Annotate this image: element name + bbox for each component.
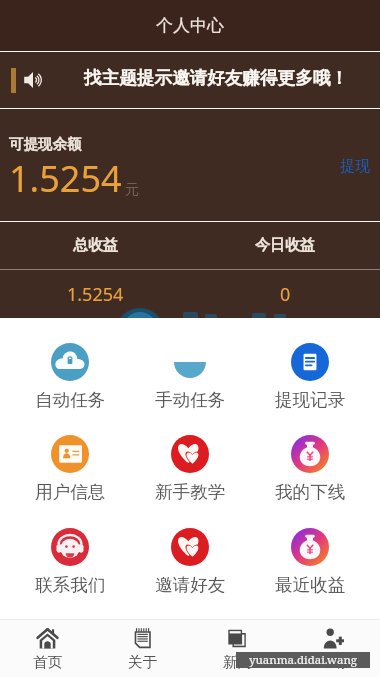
button[interactable]: 找主题提示邀请好友赚得更多哦！	[0, 52, 380, 108]
staticText: 邀请	[318, 653, 348, 671]
staticText: 可提现余额	[9, 135, 82, 153]
staticText: 个人中心	[156, 15, 224, 36]
staticText: 手动任务	[155, 389, 226, 411]
staticText: 新手教学	[155, 481, 226, 503]
button[interactable]: 新闻	[190, 620, 285, 677]
staticText: 提现记录	[275, 389, 346, 411]
button[interactable]: 自动任务	[10, 343, 130, 411]
staticText: 联系我们	[35, 574, 106, 596]
staticText: 0	[280, 282, 291, 307]
button[interactable]: 新手教学	[130, 435, 250, 503]
button[interactable]: 最近收益	[250, 528, 370, 596]
staticText: 邀请好友	[155, 574, 226, 596]
button[interactable]: 首页	[0, 620, 95, 677]
staticText: 1.5254	[9, 154, 122, 203]
staticText: 我的下线	[275, 481, 346, 503]
staticText: 自动任务	[35, 389, 106, 411]
button[interactable]: 邀请好友	[130, 528, 250, 596]
staticText: 1.5254	[67, 282, 124, 307]
staticText: 总收益	[73, 236, 118, 255]
button[interactable]: 我的下线	[250, 435, 370, 503]
button[interactable]: 关于	[95, 620, 190, 677]
staticText: 最近收益	[275, 574, 346, 596]
staticText: 今日收益	[255, 236, 315, 255]
staticText: 新闻	[223, 653, 253, 671]
button[interactable]: 邀请	[285, 620, 380, 677]
staticText: 元	[125, 181, 139, 199]
button[interactable]: 联系我们	[10, 528, 130, 596]
staticText: yuanma.didai.wang	[249, 652, 358, 668]
staticText: 首页	[33, 653, 63, 671]
staticText: 关于	[128, 653, 158, 671]
staticText: 用户信息	[35, 481, 106, 503]
button[interactable]: 用户信息	[10, 435, 130, 503]
button[interactable]: 提现记录	[250, 343, 370, 411]
button[interactable]: 手动任务	[130, 343, 250, 411]
button[interactable]: 提现	[337, 154, 373, 179]
staticText: 找主题提示邀请好友赚得更多哦！	[84, 67, 348, 89]
staticText: 提现	[340, 157, 370, 176]
